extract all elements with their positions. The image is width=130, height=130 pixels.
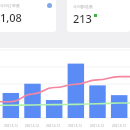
staticText: 2021-5-12 bbox=[46, 124, 60, 128]
staticText: 2021-5-12 bbox=[68, 124, 82, 128]
button[interactable]: 今日订单量 bbox=[0, 0, 56, 32]
staticText: 2021-5-12 bbox=[112, 124, 126, 128]
other: Info bbox=[47, 3, 52, 8]
staticText: 1,08 bbox=[0, 10, 22, 25]
staticText: 今日配送量 bbox=[73, 4, 93, 9]
button[interactable]: 今日配送量 bbox=[67, 0, 130, 32]
staticText: 2021-5-12 bbox=[25, 124, 39, 128]
button[interactable]: 2021-5-12 bbox=[0, 48, 130, 130]
staticText: 213 bbox=[73, 11, 92, 26]
staticText: 2021-5-12 bbox=[90, 124, 104, 128]
staticText: 今日订单量 bbox=[0, 3, 20, 8]
staticText: 2021-5-12 bbox=[4, 124, 18, 128]
